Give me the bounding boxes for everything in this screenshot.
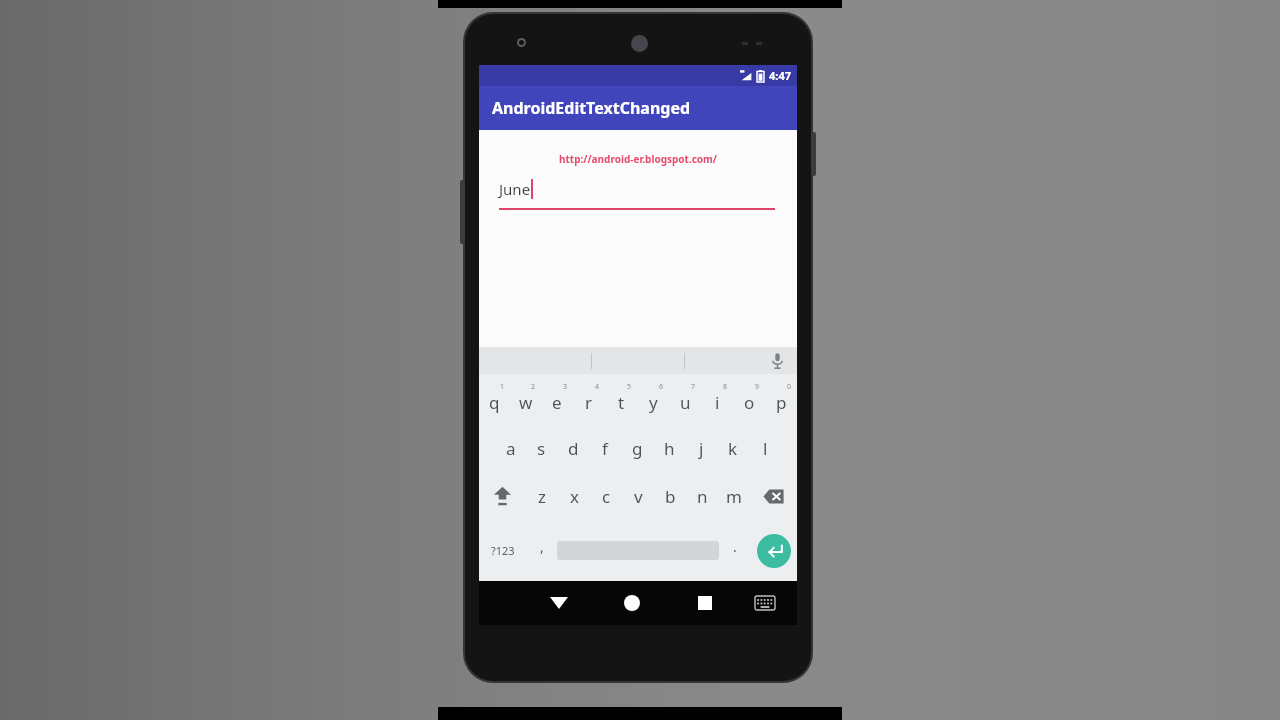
button[interactable]: a [495,424,526,472]
staticText: f [602,437,608,460]
button[interactable]: Home [595,581,668,625]
button[interactable]: June [499,175,775,210]
staticText: 4 [595,382,600,392]
staticText: June [499,179,531,199]
staticText: e [552,391,562,414]
button[interactable]: 1 [479,374,510,424]
staticText: http://android-er.blogspot.com/ [559,152,718,166]
staticText: , [540,537,544,556]
button[interactable]: Shift [479,472,526,520]
button[interactable]: Enter [757,534,791,568]
button[interactable]: Recents [668,581,741,625]
button[interactable]: v [622,472,654,520]
button[interactable]: AndroidEditTextChanged [479,86,797,130]
button[interactable]: m [718,472,750,520]
staticText: o [744,391,755,414]
staticText: z [538,485,546,508]
staticText: 8 [723,382,728,392]
button[interactable]: 8 [701,374,733,424]
button[interactable]: 3 [541,374,573,424]
staticText: 3 [563,382,568,392]
button[interactable]: d [557,424,589,472]
button[interactable]: g [621,424,653,472]
staticText: ?123 [491,543,515,558]
button[interactable]: . [719,520,750,581]
staticText: i [715,391,720,414]
staticText: 5 [627,382,632,392]
button[interactable]: h [653,424,685,472]
button[interactable]: c [590,472,622,520]
staticText: 1 [500,382,505,392]
button[interactable]: 4 [573,374,605,424]
button[interactable]: s [526,424,557,472]
staticText: d [568,437,579,460]
staticText: u [680,391,691,414]
staticText: y [649,391,658,414]
staticText: n [697,485,708,508]
staticText: 0 [787,382,792,392]
button[interactable]: b [654,472,686,520]
staticText: v [634,485,643,508]
staticText: g [632,437,643,460]
button[interactable]: 2 [510,374,541,424]
button[interactable]: 0 [765,374,797,424]
staticText: 7 [691,382,696,392]
button[interactable]: 9 [733,374,765,424]
staticText: 6 [659,382,664,392]
button[interactable]: x [558,472,590,520]
staticText: a [506,437,516,460]
button[interactable]: Switch keyboard [741,581,789,625]
button[interactable]: Back [523,581,595,625]
staticText: m [726,485,742,508]
button[interactable]: z [526,472,558,520]
button[interactable]: Delete [750,472,797,520]
staticText: x [570,485,579,508]
button[interactable]: , [526,520,557,581]
button[interactable]: 6 [637,374,669,424]
staticText: t [618,391,625,414]
staticText: p [776,391,787,414]
button[interactable]: ?123 [479,520,526,581]
button[interactable]: j [685,424,717,472]
staticText: q [489,391,500,414]
staticText: 2 [531,382,536,392]
staticText: b [665,485,676,508]
staticText: l [763,437,768,460]
button[interactable]: 5 [605,374,637,424]
staticText: j [699,437,704,460]
staticText: h [664,437,675,460]
button[interactable]: k [717,424,749,472]
button[interactable]: n [686,472,718,520]
staticText: 4:47 [769,68,791,83]
staticText: . [733,537,737,556]
staticText: r [585,391,593,414]
staticText: w [519,391,533,414]
button[interactable]: l [749,424,781,472]
button[interactable]: Voice input [765,349,789,373]
staticText: k [728,437,738,460]
staticText: s [537,437,546,460]
button[interactable]: f [589,424,621,472]
button[interactable]: 7 [669,374,701,424]
staticText: AndroidEditTextChanged [492,97,691,119]
staticText: 9 [755,382,760,392]
staticText: c [602,485,611,508]
